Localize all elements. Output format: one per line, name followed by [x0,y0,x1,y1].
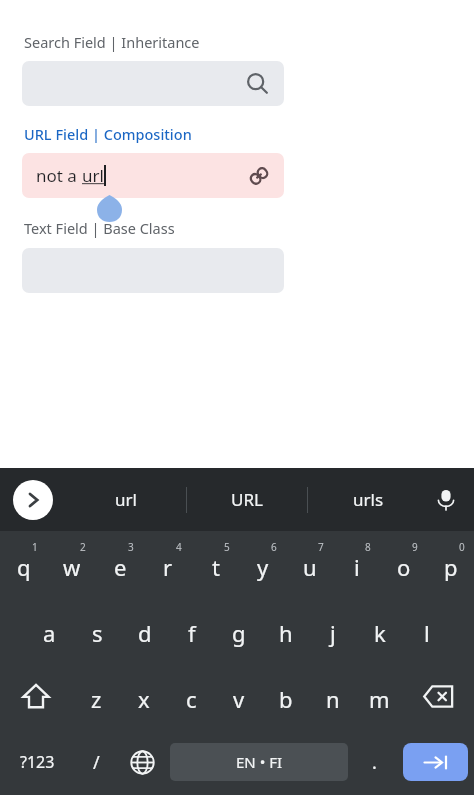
button[interactable]: i [333,531,380,597]
button[interactable]: b [262,663,309,729]
button[interactable]: urls [308,468,428,531]
button[interactable]: Backspace [403,663,474,729]
button[interactable]: z [72,663,120,729]
staticText: d [138,618,152,648]
button[interactable]: e [96,531,144,597]
staticText: x [138,684,150,714]
staticText: h [279,618,293,648]
staticText: c [186,684,197,714]
button[interactable]: / [74,729,118,795]
staticText: t [212,552,220,582]
staticText: i [354,552,360,582]
button[interactable]: ?123 [0,729,74,795]
button[interactable]: q [0,531,48,597]
staticText: URL Field | Composition [24,124,192,144]
button[interactable]: Search [22,61,284,106]
button[interactable]: a [25,597,73,663]
staticText: g [232,618,246,648]
button[interactable]: Search [245,71,271,97]
staticText: 4 [176,540,182,554]
button[interactable]: f [168,597,215,663]
staticText: / [93,750,100,775]
button[interactable]: n [309,663,356,729]
staticText: z [91,684,102,714]
staticText: 7 [318,540,324,554]
staticText: f [188,618,196,648]
button[interactable]: s [73,597,121,663]
button[interactable]: j [309,597,356,663]
staticText: 5 [224,540,230,554]
staticText: 9 [412,540,418,554]
staticText: url [82,164,104,187]
staticText: u [303,552,317,582]
staticText: v [233,684,245,714]
staticText: 1 [32,540,38,554]
button[interactable]: Enter [403,743,468,781]
button[interactable]: not a [22,153,284,198]
button[interactable]: Change keyboard language [118,729,167,795]
button[interactable]: m [356,663,403,729]
staticText: n [326,684,340,714]
button[interactable]: o [380,531,427,597]
staticText: j [330,618,336,648]
staticText: a [43,618,56,648]
staticText: y [257,552,269,582]
button[interactable]: u [286,531,333,597]
staticText: l [424,618,430,648]
button[interactable]: y [239,531,286,597]
button[interactable]: Open link [247,164,271,188]
button[interactable]: x [120,663,168,729]
staticText: 3 [128,540,134,554]
button[interactable]: URL [187,468,307,531]
staticText: p [444,552,458,582]
staticText: URL [231,488,263,511]
staticText: e [114,552,127,582]
button[interactable]: g [215,597,262,663]
button[interactable]: url [66,468,186,531]
button[interactable]: c [168,663,215,729]
staticText: url [115,488,137,511]
staticText: b [279,684,293,714]
button[interactable]: h [262,597,309,663]
button[interactable]: t [192,531,239,597]
staticText: s [92,618,103,648]
staticText: 0 [459,540,465,554]
button[interactable]: Shift [0,663,72,729]
staticText: r [163,552,173,582]
button[interactable]: k [356,597,403,663]
staticText: o [397,552,411,582]
staticText: Text Field | Base Class [24,218,175,238]
button[interactable]: r [144,531,192,597]
staticText: 2 [80,540,86,554]
button[interactable]: EN • FI [170,743,348,781]
staticText: not a [36,164,82,187]
staticText: Search Field | Inheritance [24,32,200,52]
button[interactable]: v [215,663,262,729]
staticText: q [17,552,31,582]
button[interactable]: Voice input [430,484,462,516]
staticText: k [374,618,386,648]
staticText: ?123 [20,751,55,773]
button[interactable]: More suggestions [13,480,53,520]
staticText: 6 [271,540,277,554]
staticText: w [63,552,81,582]
staticText: . [372,750,377,775]
button[interactable]: . [351,729,397,795]
button[interactable]: p [427,531,474,597]
button[interactable]: w [48,531,96,597]
staticText: urls [353,488,384,511]
button[interactable]: l [403,597,450,663]
button[interactable]: d [121,597,168,663]
staticText: m [369,684,390,714]
staticText: 8 [365,540,371,554]
staticText: EN • FI [236,752,283,772]
